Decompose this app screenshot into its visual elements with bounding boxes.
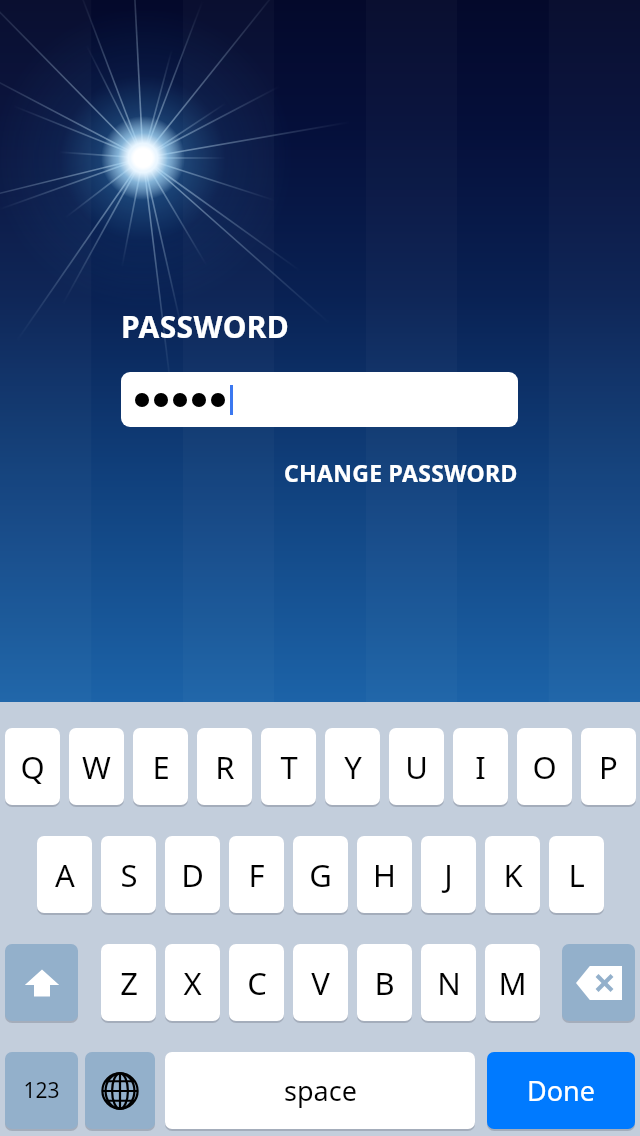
- staticText: U: [405, 746, 428, 788]
- button[interactable]: A: [37, 836, 92, 913]
- button[interactable]: I: [453, 728, 508, 805]
- button[interactable]: N: [421, 944, 476, 1021]
- button[interactable]: 123: [5, 1052, 78, 1129]
- staticText: K: [503, 854, 523, 896]
- button[interactable]: H: [357, 836, 412, 913]
- staticText: M: [498, 962, 527, 1004]
- button[interactable]: X: [165, 944, 220, 1021]
- staticText: C: [247, 962, 267, 1004]
- button[interactable]: V: [293, 944, 348, 1021]
- button[interactable]: L: [549, 836, 604, 913]
- staticText: J: [444, 854, 453, 896]
- staticText: E: [152, 746, 170, 788]
- button[interactable]: U: [389, 728, 444, 805]
- button[interactable]: E: [133, 728, 188, 805]
- button[interactable]: P: [581, 728, 636, 805]
- button[interactable]: S: [101, 836, 156, 913]
- staticText: Y: [344, 746, 362, 788]
- button[interactable]: J: [421, 836, 476, 913]
- button[interactable]: K: [485, 836, 540, 913]
- button[interactable]: D: [165, 836, 220, 913]
- staticText: P: [599, 746, 618, 788]
- button[interactable]: T: [261, 728, 316, 805]
- button[interactable]: Y: [325, 728, 380, 805]
- button[interactable]: space: [165, 1052, 475, 1129]
- staticText: I: [475, 746, 486, 788]
- staticText: L: [568, 854, 585, 896]
- staticText: D: [181, 854, 204, 896]
- staticText: Z: [120, 962, 138, 1004]
- staticText: S: [120, 854, 138, 896]
- button[interactable]: Q: [5, 728, 60, 805]
- button[interactable]: Done: [487, 1052, 635, 1129]
- staticText: W: [82, 746, 111, 788]
- button[interactable]: O: [517, 728, 572, 805]
- staticText: F: [248, 854, 265, 896]
- staticText: O: [532, 746, 557, 788]
- staticText: V: [311, 962, 330, 1004]
- staticText: T: [280, 746, 298, 788]
- staticText: G: [309, 854, 332, 896]
- button[interactable]: [121, 372, 518, 427]
- button[interactable]: CHANGE PASSWORD: [284, 457, 518, 488]
- staticText: Done: [527, 1072, 595, 1109]
- button[interactable]: Shift: [5, 944, 78, 1021]
- button[interactable]: Change keyboard: [85, 1052, 155, 1129]
- staticText: CHANGE PASSWORD: [284, 457, 518, 488]
- staticText: Q: [20, 746, 45, 788]
- staticText: X: [183, 962, 202, 1004]
- staticText: space: [284, 1072, 357, 1109]
- staticText: R: [215, 746, 235, 788]
- staticText: A: [55, 854, 75, 896]
- button[interactable]: Backspace: [562, 944, 635, 1021]
- button[interactable]: M: [485, 944, 540, 1021]
- staticText: H: [373, 854, 396, 896]
- button[interactable]: Z: [101, 944, 156, 1021]
- staticText: B: [374, 962, 395, 1004]
- button[interactable]: G: [293, 836, 348, 913]
- staticText: N: [437, 962, 461, 1004]
- staticText: 123: [23, 1076, 60, 1105]
- button[interactable]: W: [69, 728, 124, 805]
- button[interactable]: C: [229, 944, 284, 1021]
- button[interactable]: R: [197, 728, 252, 805]
- staticText: PASSWORD: [121, 306, 290, 347]
- button[interactable]: F: [229, 836, 284, 913]
- button[interactable]: B: [357, 944, 412, 1021]
